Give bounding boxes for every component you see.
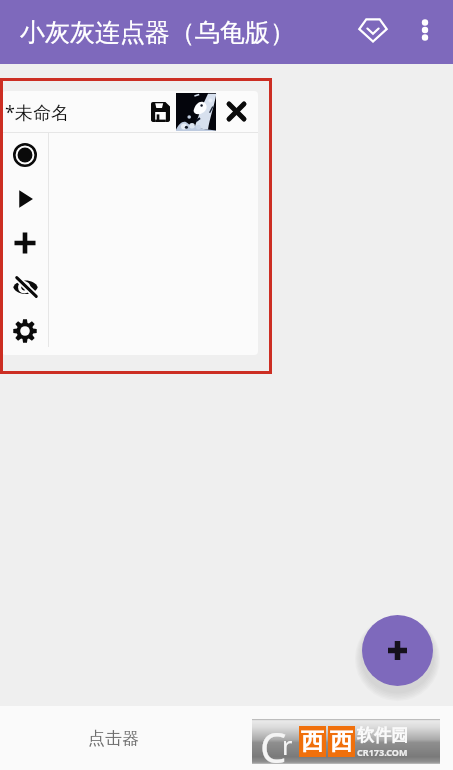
staticText: C — [260, 718, 287, 763]
staticText: 点击器 — [88, 728, 139, 749]
button[interactable]: Premium — [346, 1, 400, 59]
button[interactable]: Save — [129, 91, 171, 132]
button[interactable]: Preview — [176, 93, 216, 131]
button[interactable]: Settings — [2, 309, 48, 353]
staticText: 西 — [330, 727, 353, 756]
staticText: *未命名 — [5, 100, 69, 125]
button[interactable]: More options — [400, 1, 446, 59]
staticText: r — [282, 728, 293, 762]
button[interactable]: 点击器 — [58, 706, 168, 770]
staticText: 小灰灰连点器（乌龟版） — [20, 17, 295, 48]
staticText: 西 — [301, 727, 324, 756]
button[interactable]: Hide — [2, 265, 48, 309]
button[interactable]: Add — [362, 615, 433, 686]
button[interactable]: Record — [2, 133, 48, 177]
button[interactable]: Close — [221, 91, 251, 132]
staticText: 软件园 — [357, 725, 408, 746]
button[interactable]: Play — [2, 177, 48, 221]
button[interactable]: Add point — [2, 221, 48, 265]
staticText: CR173.COM — [357, 746, 408, 758]
